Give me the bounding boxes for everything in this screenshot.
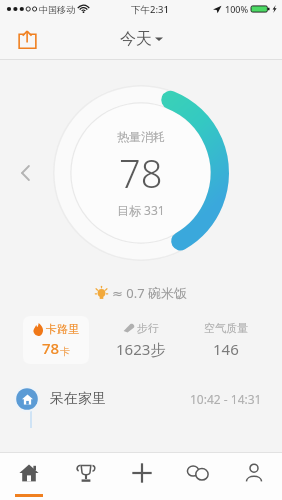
staticText: 卡路里	[46, 322, 79, 336]
button[interactable]: 卡路里	[14, 316, 98, 364]
staticText: 146	[213, 339, 239, 359]
staticText: 78	[42, 338, 60, 358]
staticText: 空气质量	[204, 321, 248, 335]
button[interactable]: Messages	[170, 452, 226, 500]
button[interactable]: Previous	[12, 160, 38, 186]
staticText: 10:42 - 14:31	[190, 391, 262, 407]
staticText: 热量消耗	[117, 129, 165, 144]
button[interactable]: 呆在家里	[0, 378, 282, 428]
staticText: 卡	[60, 345, 70, 358]
staticText: 步行	[137, 321, 159, 335]
button[interactable]: Share	[10, 22, 44, 56]
staticText: 今天	[120, 29, 152, 49]
button[interactable]: Add	[114, 452, 170, 500]
staticText: 下午2:31	[131, 3, 169, 16]
staticText: 100%	[225, 3, 249, 15]
button[interactable]: Achievements	[57, 452, 114, 500]
staticText: 呆在家里	[50, 390, 106, 408]
staticText: 目标 331	[117, 202, 165, 218]
button[interactable]: 今天	[120, 29, 163, 49]
staticText: ≈ 0.7 碗米饭	[112, 284, 188, 302]
button[interactable]: 步行	[98, 317, 183, 363]
button[interactable]: 空气质量	[183, 317, 268, 363]
button[interactable]: 热量消耗	[53, 85, 229, 261]
staticText: 78	[119, 147, 163, 199]
button[interactable]: Profile	[226, 452, 282, 500]
staticText: 1623步	[116, 339, 166, 359]
button[interactable]: Home	[0, 452, 57, 500]
staticText: 中国移动	[39, 4, 75, 15]
